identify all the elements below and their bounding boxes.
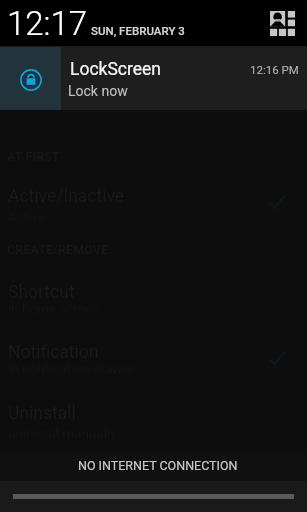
staticText: Lock now [68, 83, 128, 99]
staticText: 12:17 [7, 4, 88, 43]
staticText: SUN, FEBRUARY 3 [91, 24, 185, 37]
button[interactable]: Close notification shade [0, 481, 307, 512]
staticText: CREATE/REMOVE [7, 242, 109, 257]
button[interactable]: LockScreen [0, 47, 307, 110]
staticText: Uninstall [8, 403, 76, 424]
staticText: 12:16 PM [250, 63, 299, 76]
button[interactable]: Quick settings [268, 9, 296, 37]
staticText: Shortcut [8, 282, 75, 303]
staticText: Active/Inactive [8, 186, 125, 207]
staticText: AT FIRST [7, 149, 60, 164]
staticText: NO INTERNET CONNECTION [78, 458, 238, 473]
staticText: LockScreen [70, 59, 161, 80]
staticText: Notification [8, 342, 99, 363]
